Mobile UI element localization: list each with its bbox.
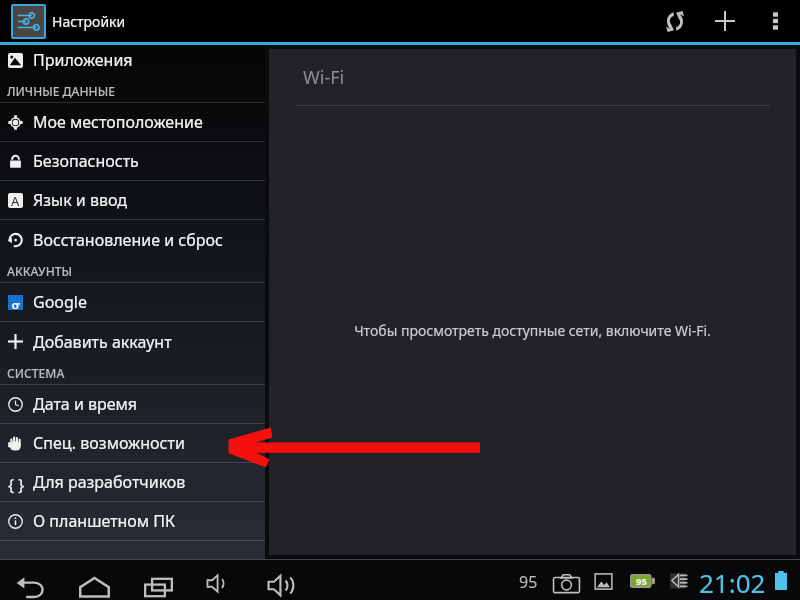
button[interactable]: A — [0, 181, 265, 219]
staticText: 95 — [519, 571, 538, 593]
button[interactable]: { } — [0, 463, 265, 501]
staticText: ЛИЧНЫЕ ДАННЫЕ — [7, 83, 115, 99]
staticText: Спец. возможности — [33, 432, 185, 454]
button[interactable]: Settings — [11, 4, 46, 39]
staticText: Приложения — [33, 49, 133, 71]
button[interactable]: Back — [7, 560, 55, 600]
staticText: { } — [8, 474, 23, 490]
button[interactable]: g — [0, 283, 265, 321]
staticText: Добавить аккаунт — [33, 331, 172, 353]
staticText: Дата и время — [33, 393, 138, 415]
staticText: Чтобы просмотреть доступные сети, включи… — [354, 321, 711, 340]
staticText: Восстановление и сброс — [33, 229, 223, 251]
button[interactable]: More options — [751, 0, 799, 42]
staticText: СИСТЕМА — [7, 365, 65, 381]
other: Battery — [775, 571, 787, 590]
staticText: АККАУНТЫ — [7, 263, 73, 279]
button[interactable]: Приложения — [0, 45, 265, 79]
button[interactable]: Добавить аккаунт — [0, 322, 265, 361]
staticText: О планшетном ПК — [33, 510, 176, 532]
other: Sound — [669, 571, 689, 591]
staticText: 21:02 — [699, 565, 766, 599]
other: Gallery — [594, 572, 613, 591]
button[interactable]: Безопасность — [0, 142, 265, 180]
button[interactable]: Home — [70, 560, 118, 600]
staticText: 95 — [636, 575, 647, 588]
other: Battery 95 percent — [630, 574, 655, 588]
button[interactable]: Recent apps — [134, 560, 182, 600]
staticText: Мое местоположение — [33, 111, 203, 133]
button[interactable]: О планшетном ПК — [0, 502, 265, 540]
staticText: Безопасность — [33, 150, 139, 172]
button[interactable]: Спец. возможности — [0, 424, 265, 462]
staticText: Язык и ввод — [33, 189, 128, 211]
button[interactable]: Volume down — [194, 560, 242, 600]
staticText: g — [11, 294, 21, 309]
staticText: Настройки — [52, 12, 126, 31]
button[interactable]: Дата и время — [0, 385, 265, 423]
button[interactable]: Мое местоположение — [0, 103, 265, 141]
staticText: A — [11, 193, 20, 207]
staticText: Для разработчиков — [33, 471, 186, 493]
staticText: Google — [33, 291, 88, 313]
other: Screenshot — [553, 571, 580, 591]
button[interactable]: Add — [701, 0, 749, 42]
button[interactable]: Volume up — [257, 560, 305, 600]
button[interactable]: Sync — [651, 0, 699, 42]
staticText: Wi-Fi — [303, 65, 345, 90]
button[interactable]: Восстановление и сброс — [0, 220, 265, 259]
